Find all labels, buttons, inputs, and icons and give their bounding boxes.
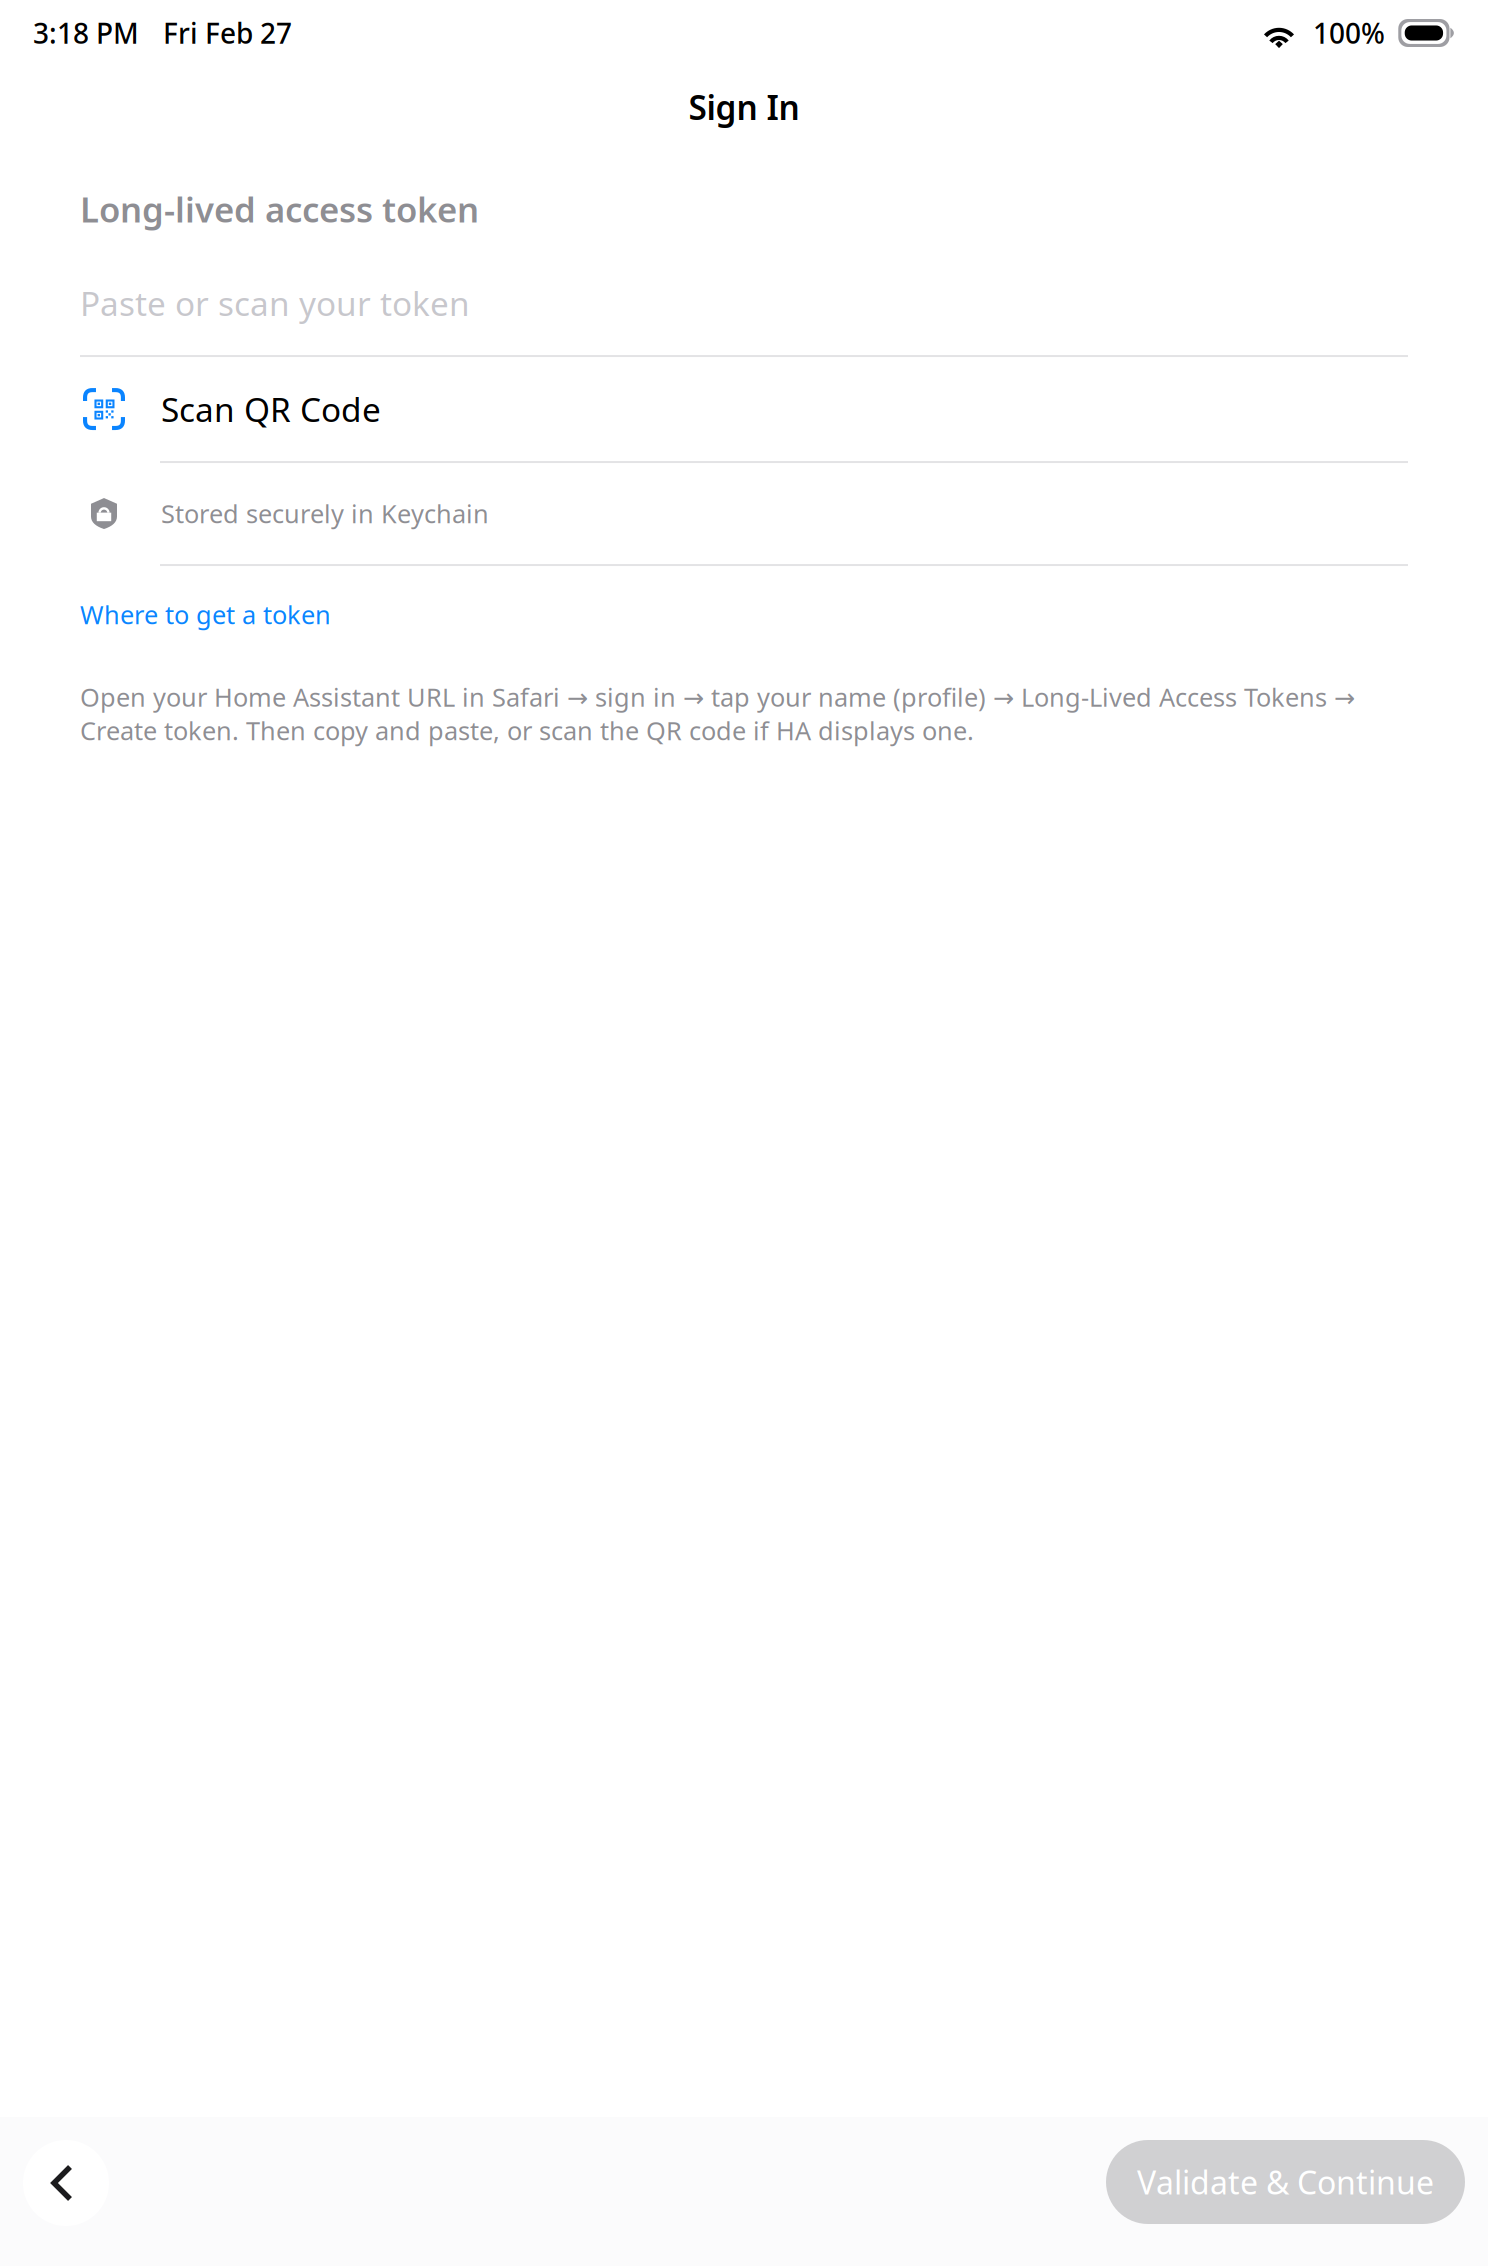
button[interactable]: Paste or scan your token xyxy=(0,280,1488,326)
staticText: Open your Home Assistant URL in Safari →… xyxy=(80,680,1355,747)
staticText: Stored securely in Keychain xyxy=(161,497,489,530)
button[interactable]: Back xyxy=(23,2140,109,2246)
button[interactable]: Validate & Continue xyxy=(1106,2140,1465,2246)
staticText: Where to get a token xyxy=(80,598,331,631)
staticText: Sign In xyxy=(688,85,799,129)
staticText: Long-lived access token xyxy=(80,186,479,232)
staticText: Paste or scan your token xyxy=(80,281,470,325)
button[interactable]: Where to get a token xyxy=(0,566,1488,654)
button[interactable]: Scan QR Code xyxy=(0,357,1488,461)
staticText: Fri Feb 27 xyxy=(163,14,292,52)
staticText: Validate & Continue xyxy=(1137,2161,1434,2203)
staticText: 3:18 PM xyxy=(33,14,139,52)
staticText: Scan QR Code xyxy=(161,387,381,431)
staticText: 100% xyxy=(1313,14,1385,52)
